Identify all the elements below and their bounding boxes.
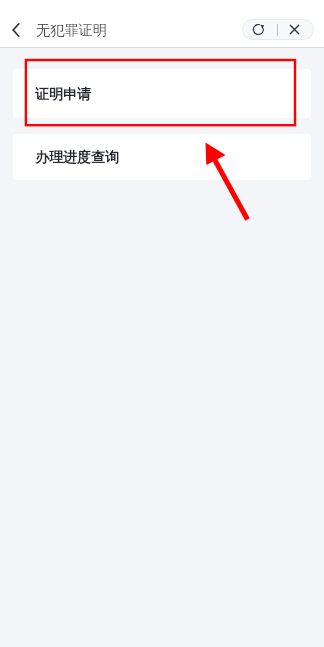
staticText: 无犯罪证明 [36, 21, 107, 39]
staticText: 办理进度查询 [35, 149, 119, 167]
button[interactable]: Refresh [242, 19, 277, 40]
staticText: 证明申请 [35, 86, 91, 104]
button[interactable]: 办理进度查询 [13, 134, 311, 180]
other: Annotation highlighting 证明申请 [0, 0, 324, 647]
button[interactable]: Close [278, 19, 314, 40]
button[interactable]: 证明申请 [13, 69, 311, 118]
button[interactable]: Back [1, 15, 31, 45]
